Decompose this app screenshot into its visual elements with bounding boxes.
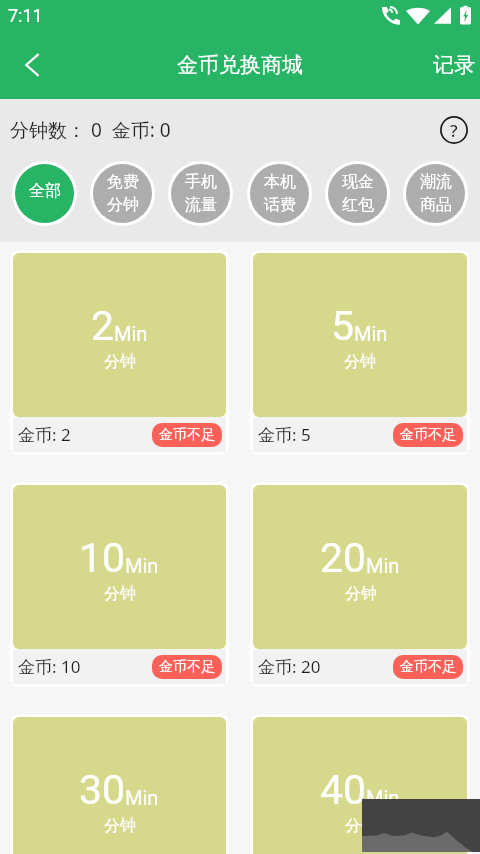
button[interactable]: 2: [10, 250, 229, 455]
button[interactable]: 10: [10, 482, 229, 687]
button[interactable]: 免费: [93, 164, 152, 223]
button[interactable]: 本机: [250, 164, 309, 223]
button[interactable]: 金币不足: [393, 655, 463, 679]
staticText: 潮流: [420, 172, 452, 192]
button[interactable]: 金币不足: [393, 423, 463, 447]
staticText: 分钟: [104, 816, 136, 836]
button[interactable]: 40: [250, 714, 470, 854]
staticText: 记录: [433, 52, 475, 78]
button[interactable]: 20: [250, 482, 470, 687]
staticText: 20: [320, 534, 367, 582]
staticText: 40: [320, 766, 367, 814]
staticText: 30: [79, 766, 126, 814]
staticText: 金币: 5: [258, 423, 311, 446]
staticText: 金币不足: [159, 426, 215, 444]
staticText: 分钟: [107, 195, 139, 215]
staticText: 分钟: [345, 584, 377, 604]
button[interactable]: Back: [0, 33, 64, 97]
staticText: 现金: [342, 172, 374, 192]
staticText: 商品: [420, 195, 452, 215]
button[interactable]: 现金: [328, 164, 387, 223]
staticText: Min: [366, 554, 400, 577]
button[interactable]: 金币不足: [152, 423, 222, 447]
staticText: Min: [354, 322, 388, 345]
staticText: 话费: [264, 195, 296, 215]
staticText: 2: [91, 302, 115, 350]
button[interactable]: 记录: [424, 42, 480, 88]
button[interactable]: 潮流: [406, 164, 465, 223]
staticText: 红包: [342, 195, 374, 215]
staticText: 免费: [107, 172, 139, 192]
staticText: 金币不足: [400, 658, 456, 676]
staticText: 金币: 2: [18, 423, 71, 446]
staticText: Min: [114, 322, 148, 345]
button[interactable]: 全部: [15, 164, 74, 223]
button[interactable]: 5: [250, 250, 470, 455]
staticText: 金币: 10: [18, 655, 81, 678]
staticText: 分钟: [104, 352, 136, 372]
staticText: 7:11: [8, 5, 43, 26]
staticText: 分钟: [104, 584, 136, 604]
staticText: 本机: [264, 172, 296, 192]
button[interactable]: Help: [439, 115, 469, 145]
staticText: 10: [79, 534, 126, 582]
staticText: 金币兑换商城: [177, 52, 303, 78]
staticText: Min: [125, 786, 159, 809]
staticText: 分钟: [345, 816, 377, 836]
staticText: 金币不足: [400, 426, 456, 444]
staticText: Min: [366, 786, 400, 809]
button[interactable]: 30: [10, 714, 229, 854]
staticText: 5: [331, 302, 355, 350]
staticText: 流量: [185, 195, 217, 215]
button[interactable]: 金币不足: [152, 655, 222, 679]
staticText: 分钟数： 0 金币: 0: [10, 117, 171, 143]
staticText: 金币不足: [159, 658, 215, 676]
staticText: ?: [450, 119, 458, 142]
staticText: 金币: 20: [258, 655, 321, 678]
staticText: 全部: [29, 181, 61, 201]
staticText: 分钟: [344, 352, 376, 372]
staticText: Min: [125, 554, 159, 577]
button[interactable]: 手机: [171, 164, 230, 223]
staticText: 手机: [185, 172, 217, 192]
